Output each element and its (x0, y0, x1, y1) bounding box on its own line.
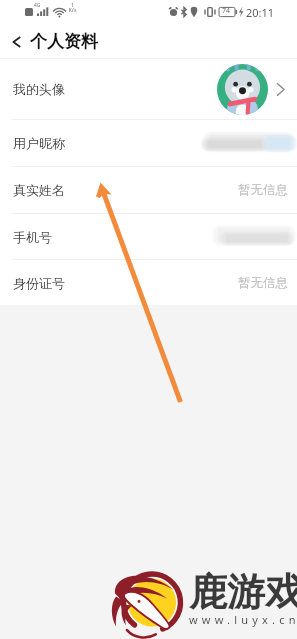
staticText: 我的头像 (13, 81, 65, 97)
staticText: 4G (34, 2, 41, 9)
button[interactable]: Back (8, 33, 26, 51)
staticText: 用户昵称 (13, 135, 65, 151)
staticText: 暂无信息 (238, 182, 288, 198)
staticText: 身份证号 (13, 275, 65, 291)
staticText: 1 K/s (68, 1, 77, 14)
staticText: 暂无信息 (238, 275, 288, 291)
staticText: 手机号 (13, 229, 52, 245)
button[interactable]: 手机号 (0, 214, 297, 259)
staticText: 鹿游戏 (189, 568, 297, 616)
button[interactable]: 用户昵称 (0, 120, 297, 166)
staticText: 真实姓名 (13, 182, 65, 198)
other: Open avatar (275, 82, 286, 97)
staticText: 个人资料 (30, 31, 98, 52)
staticText: 20:11 (246, 5, 275, 20)
staticText: www.luyx.cn (189, 612, 297, 627)
button[interactable]: 身份证号 (0, 260, 297, 305)
button[interactable]: 真实姓名 (0, 167, 297, 213)
button[interactable]: 我的头像 (0, 59, 297, 119)
staticText: 74 (222, 6, 231, 16)
